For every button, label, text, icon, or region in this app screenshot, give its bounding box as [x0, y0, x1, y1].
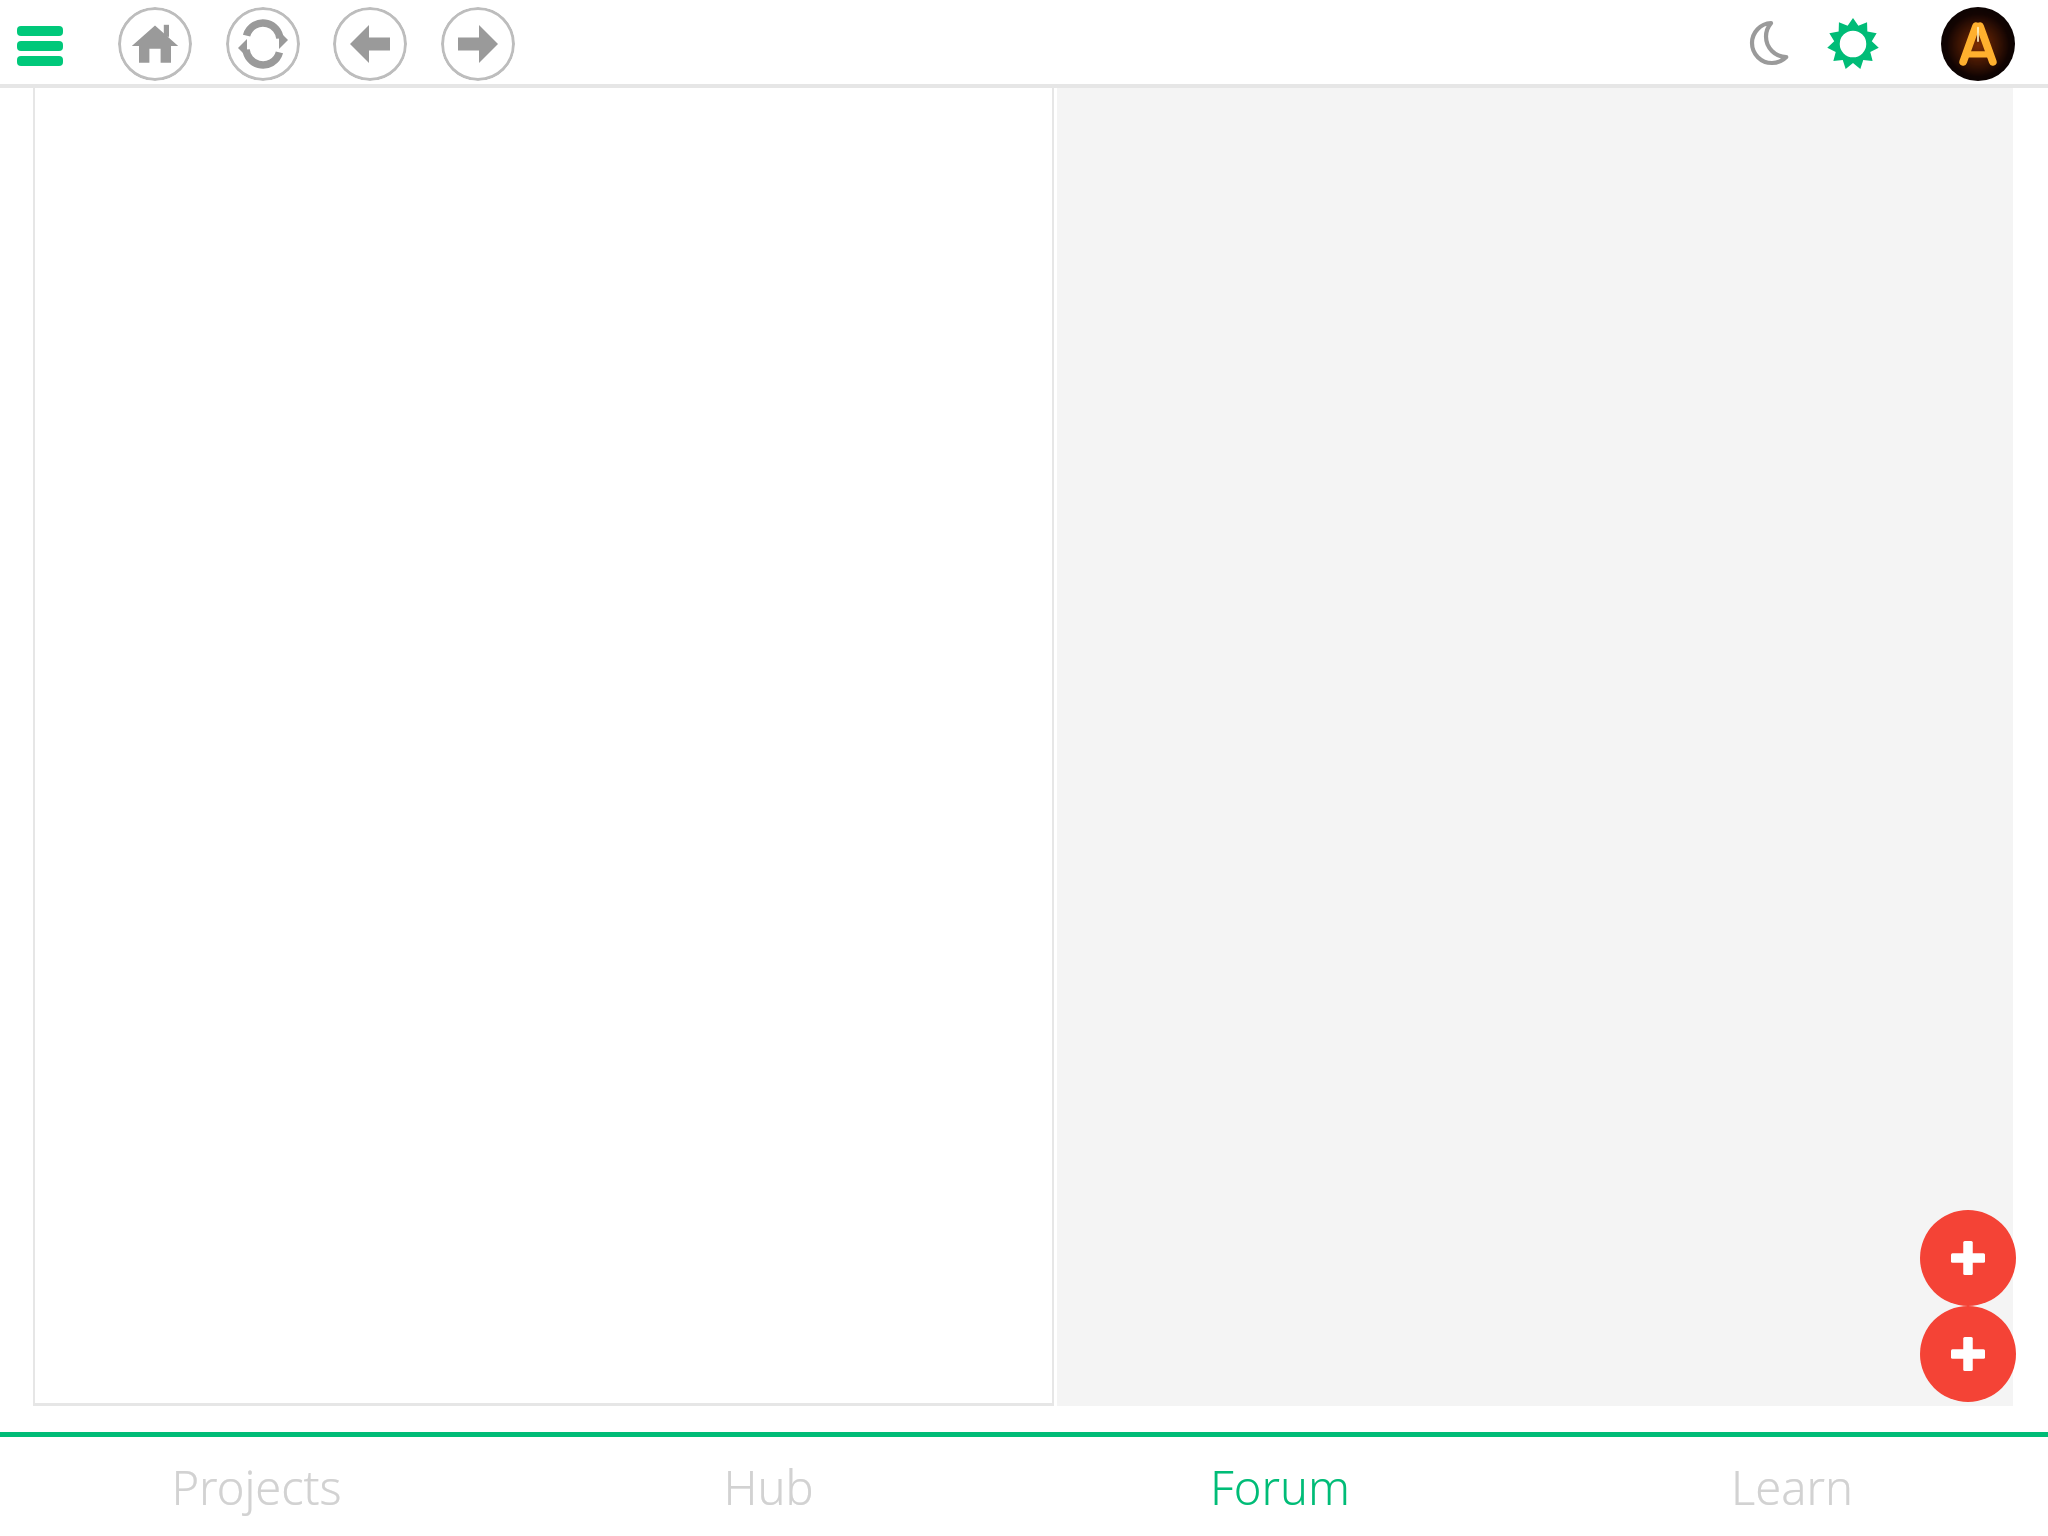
staticText: Hub — [723, 1455, 814, 1519]
button[interactable]: Account — [1938, 4, 2018, 84]
staticText: Learn — [1731, 1455, 1853, 1519]
button[interactable]: Dark mode — [1733, 3, 1815, 85]
button[interactable]: Forward — [441, 7, 515, 81]
button[interactable]: Refresh — [226, 7, 300, 81]
staticText: Forum — [1210, 1455, 1350, 1519]
button[interactable]: Add — [1920, 1210, 2016, 1306]
button[interactable]: Back — [333, 7, 407, 81]
button[interactable]: Home — [118, 7, 192, 81]
staticText: Projects — [171, 1455, 342, 1519]
button[interactable]: Projects — [0, 1437, 512, 1536]
button[interactable]: Forum — [1024, 1437, 1536, 1536]
button[interactable]: New post — [1920, 1306, 2016, 1402]
button[interactable]: Learn — [1536, 1437, 2048, 1536]
button[interactable]: Menu — [4, 4, 76, 84]
button[interactable]: Light mode — [1812, 3, 1894, 85]
button[interactable]: Hub — [512, 1437, 1024, 1536]
